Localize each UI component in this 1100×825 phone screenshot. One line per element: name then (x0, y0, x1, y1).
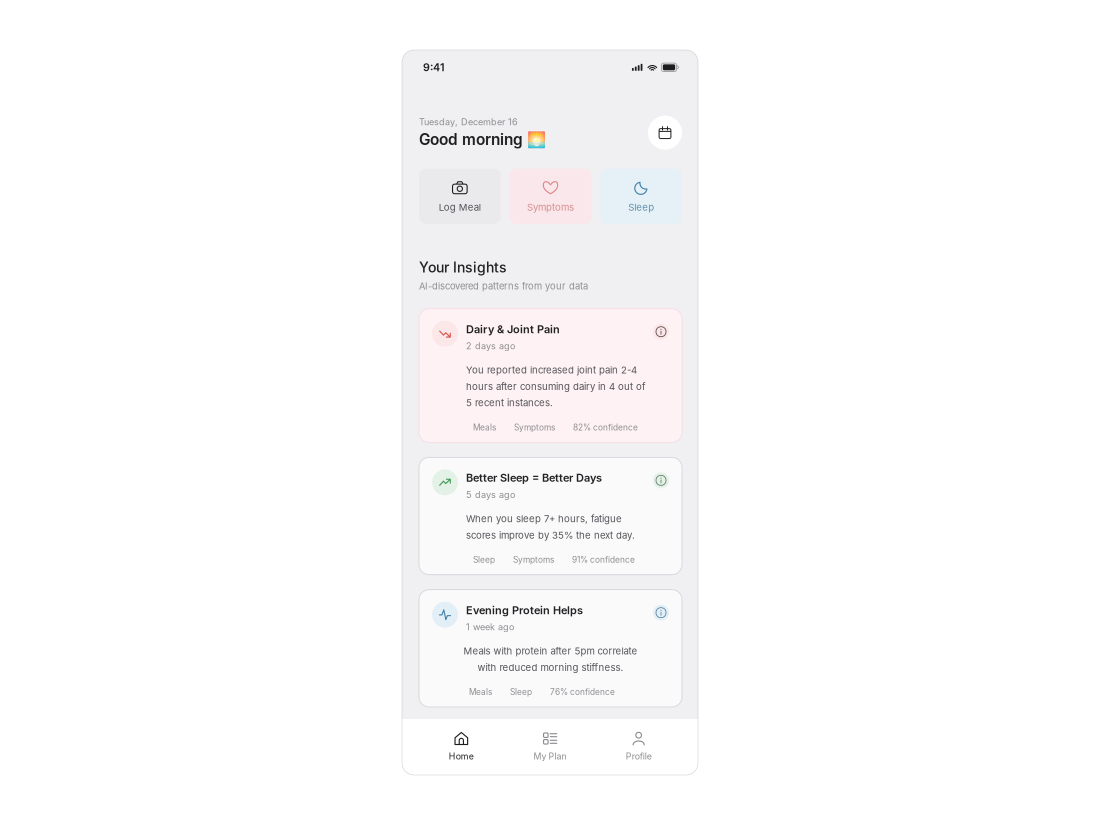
button[interactable]: My Plan (506, 719, 594, 767)
staticText: Symptoms (514, 423, 555, 432)
staticText: Log Meal (439, 202, 481, 213)
staticText: When you sleep 7+ hours, fatigue (466, 513, 622, 524)
staticText: Symptoms (527, 202, 574, 213)
staticText: with reduced morning stiffness. (477, 662, 623, 673)
staticText: 9:41 (423, 61, 445, 74)
staticText: Meals (469, 687, 492, 697)
staticText: Sleep (473, 555, 495, 565)
button[interactable]: Sleep (600, 169, 682, 224)
staticText: AI-discovered patterns from your data (419, 281, 588, 292)
button[interactable]: Dairy & Joint Pain (419, 309, 682, 442)
staticText: Better Sleep = Better Days (466, 471, 602, 484)
staticText: Good morning 🌅 (419, 130, 546, 149)
staticText: Symptoms (513, 555, 554, 565)
staticText: Sleep (628, 202, 654, 213)
button[interactable]: Better Sleep = Better Days (419, 457, 682, 575)
staticText: Profile (626, 751, 652, 761)
button[interactable]: Profile (594, 719, 683, 767)
staticText: 91% confidence (572, 555, 635, 565)
staticText: Home (449, 751, 474, 761)
staticText: scores improve by 35% the next day. (466, 529, 635, 541)
staticText: hours after consuming dairy in 4 out of (466, 381, 646, 392)
staticText: Evening Protein Helps (466, 604, 583, 617)
staticText: Meals (473, 423, 496, 432)
staticText: 5 days ago (466, 489, 515, 500)
staticText: 82% confidence (573, 423, 638, 432)
staticText: Dairy & Joint Pain (466, 323, 560, 336)
staticText: 5 recent instances. (466, 397, 553, 409)
button[interactable]: Evening Protein Helps (419, 590, 682, 707)
button[interactable]: Calendar (648, 116, 682, 150)
staticText: 2 days ago (466, 341, 515, 351)
staticText: Sleep (510, 687, 532, 697)
staticText: You reported increased joint pain 2-4 (466, 364, 637, 376)
staticText: 1 week ago (466, 622, 514, 632)
button[interactable]: Log Meal (419, 169, 501, 224)
staticText: 76% confidence (550, 687, 615, 697)
button[interactable]: Home (417, 719, 506, 767)
staticText: Your Insights (419, 259, 507, 276)
staticText: Meals with protein after 5pm correlate (463, 645, 637, 657)
button[interactable]: Symptoms (510, 169, 591, 224)
staticText: My Plan (533, 751, 566, 761)
staticText: Tuesday, December 16 (419, 117, 518, 127)
